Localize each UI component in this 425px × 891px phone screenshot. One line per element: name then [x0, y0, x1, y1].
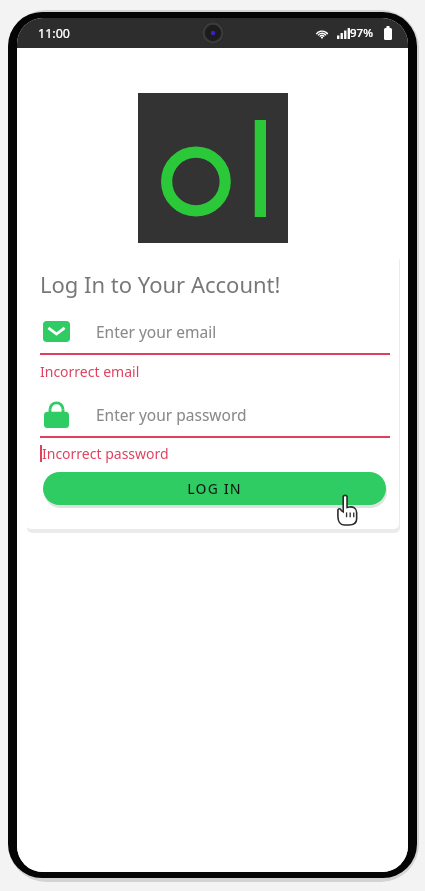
- button[interactable]: LOG IN: [43, 472, 386, 505]
- other: Email: [42, 317, 70, 345]
- button[interactable]: Email: [40, 312, 390, 350]
- staticText: 97%: [350, 25, 373, 41]
- staticText: LOG IN: [187, 479, 242, 498]
- staticText: Log In to Your Account!: [40, 269, 281, 299]
- staticText: 11:00: [38, 25, 70, 42]
- staticText: Enter your password: [96, 404, 247, 425]
- other: Password: [42, 400, 70, 428]
- staticText: Incorrect email: [40, 362, 140, 381]
- staticText: Enter your email: [96, 321, 217, 342]
- staticText: Incorrect password: [42, 444, 169, 463]
- button[interactable]: Password: [40, 395, 390, 433]
